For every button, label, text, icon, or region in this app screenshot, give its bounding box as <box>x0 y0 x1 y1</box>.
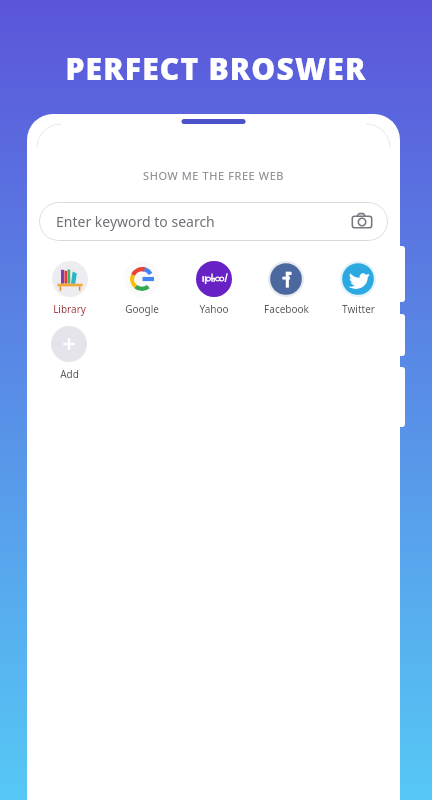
staticText: Yahoo <box>199 302 229 316</box>
button[interactable]: Google <box>106 259 178 318</box>
button[interactable]: Facebook <box>250 259 322 318</box>
button[interactable]: Enter keyword to search <box>39 202 388 241</box>
button[interactable]: Library <box>33 259 106 318</box>
staticText: PERFECT BROSWER <box>65 48 367 89</box>
staticText: Google <box>125 302 159 316</box>
button[interactable]: Add <box>33 324 105 383</box>
button[interactable]: Search by camera <box>351 211 373 233</box>
button[interactable]: Yahoo <box>178 259 250 318</box>
staticText: Enter keyword to search <box>56 212 215 231</box>
staticText: Twitter <box>342 302 375 316</box>
staticText: SHOW ME THE FREE WEB <box>143 168 285 183</box>
staticText: Add <box>60 367 79 381</box>
staticText: Facebook <box>264 302 309 316</box>
staticText: Library <box>53 302 86 316</box>
button[interactable]: Twitter <box>322 259 394 318</box>
